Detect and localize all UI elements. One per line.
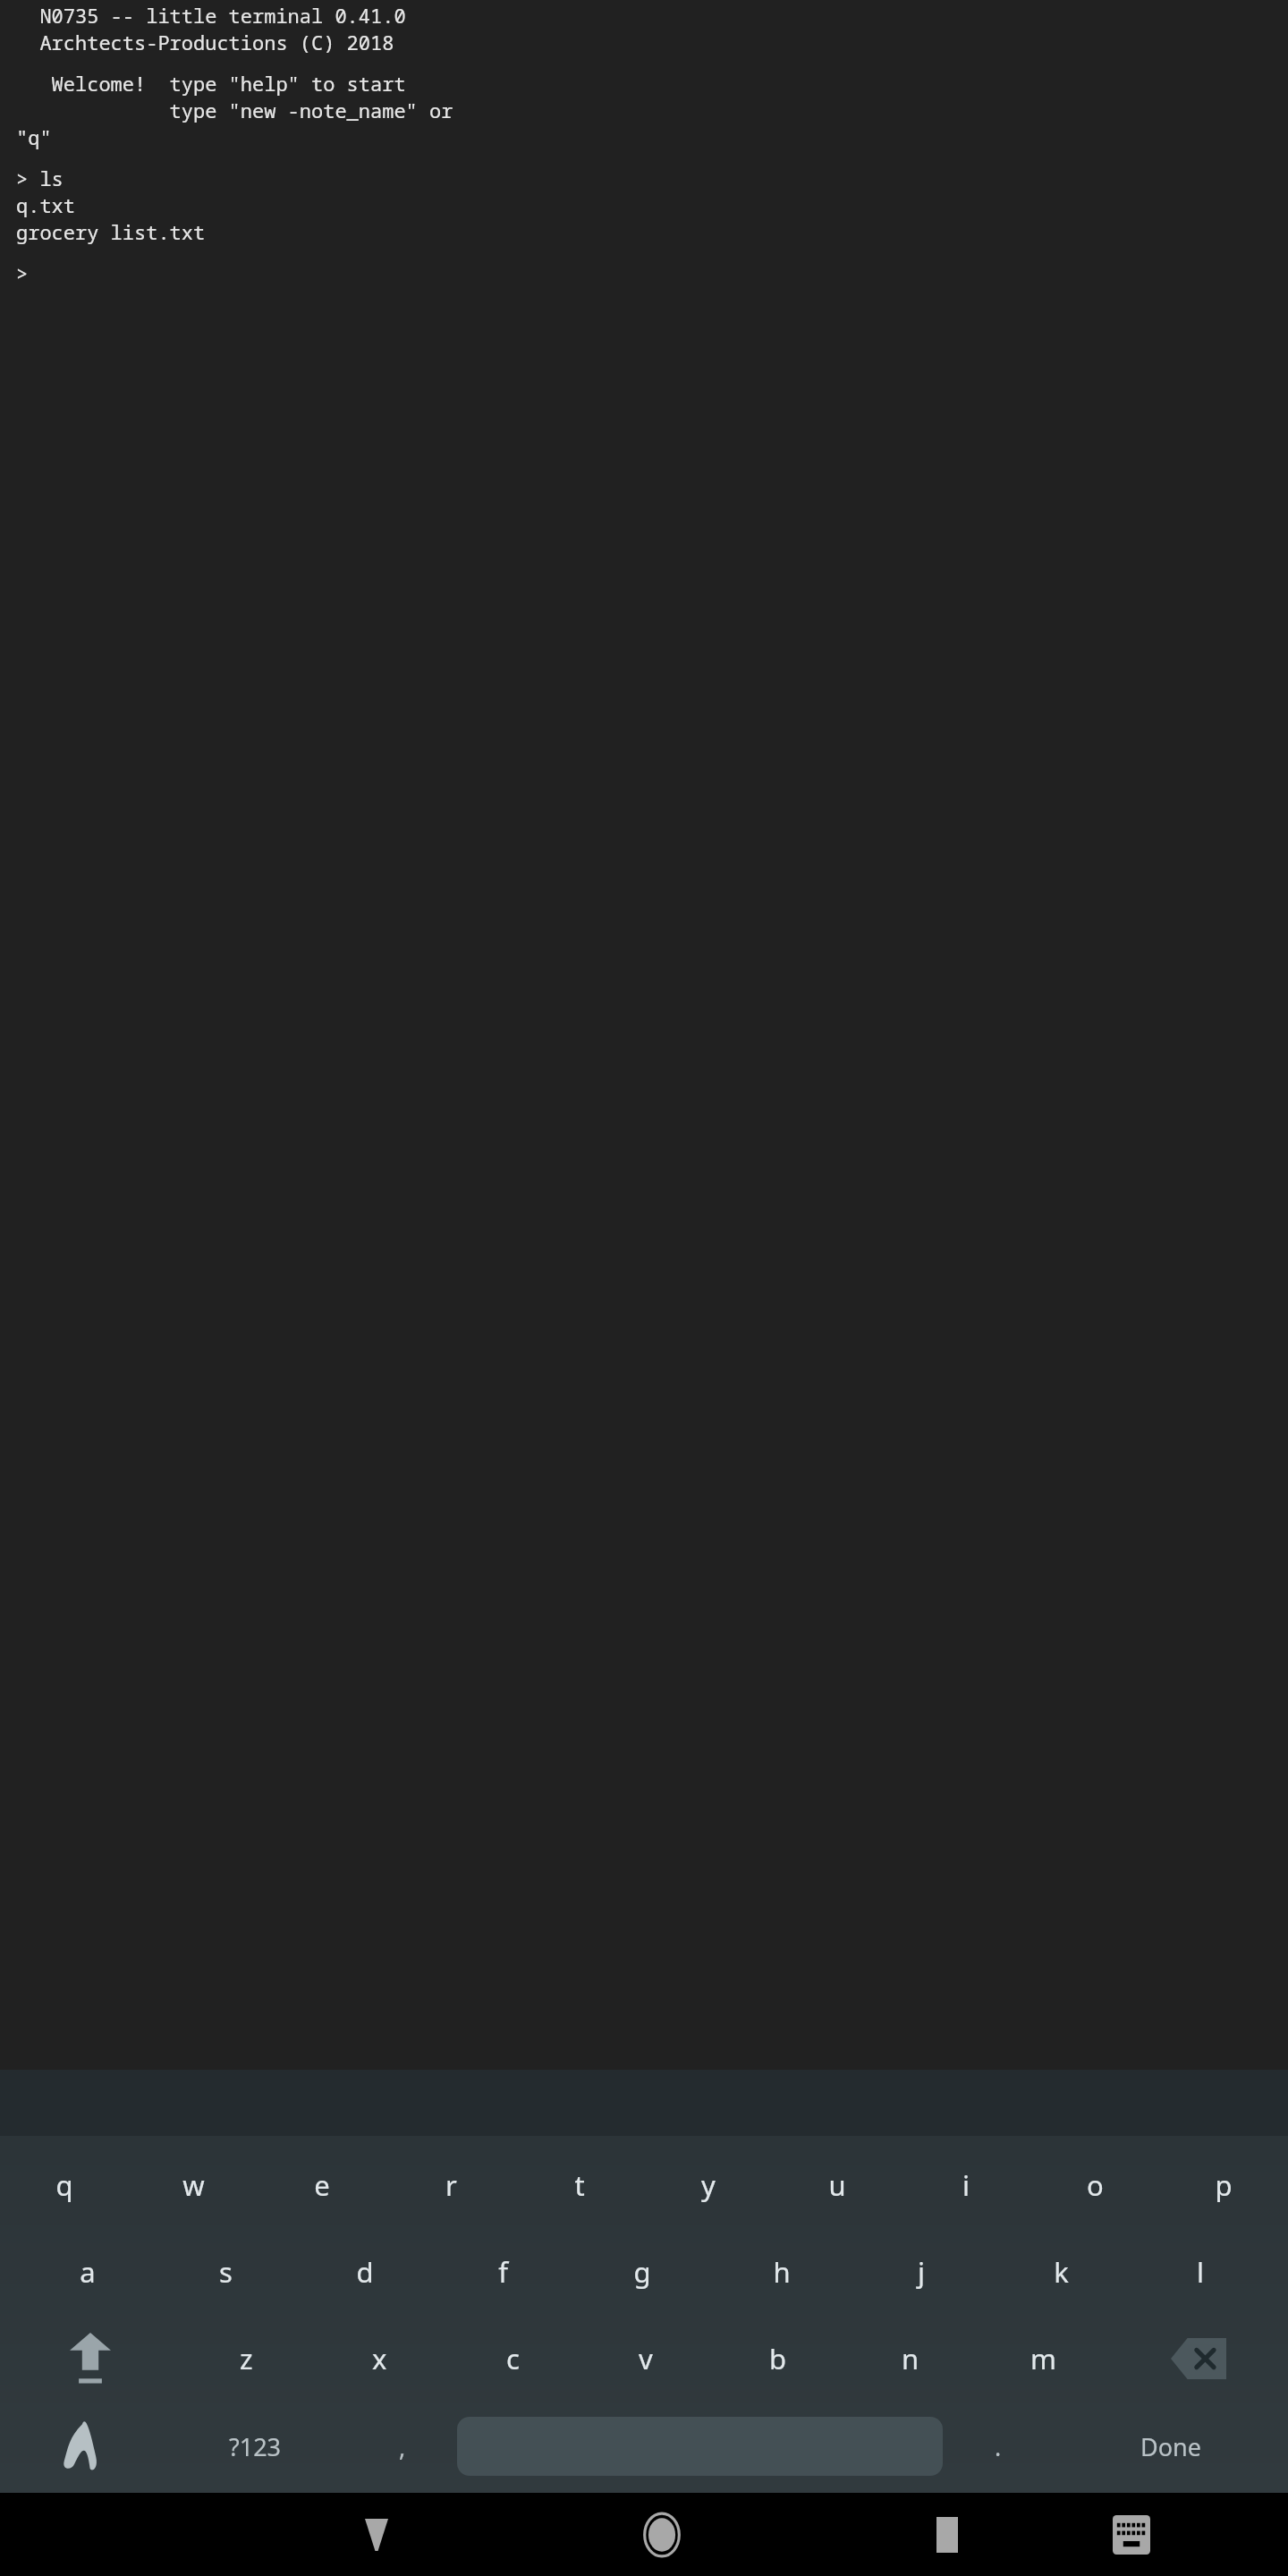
- staticText: k: [1054, 2253, 1069, 2291]
- staticText: g: [633, 2253, 651, 2291]
- staticText: r: [445, 2166, 457, 2204]
- staticText: m: [1030, 2340, 1056, 2377]
- staticText: a: [80, 2253, 96, 2291]
- button[interactable]: b: [712, 2315, 844, 2402]
- button[interactable]: a: [18, 2228, 157, 2315]
- button[interactable]: Home: [570, 2493, 754, 2576]
- staticText: Archtects-Productions (C) 2018: [16, 29, 394, 55]
- staticText: grocery list.txt: [16, 218, 206, 245]
- staticText: type "new -note_name" or: [16, 97, 453, 123]
- button[interactable]: v: [580, 2315, 712, 2402]
- staticText: t: [574, 2166, 585, 2204]
- staticText: h: [773, 2253, 791, 2291]
- staticText: w: [182, 2166, 205, 2204]
- staticText: c: [506, 2340, 520, 2377]
- button[interactable]: Shift: [0, 2315, 180, 2402]
- staticText: ?123: [229, 2430, 282, 2463]
- button[interactable]: k: [991, 2228, 1131, 2315]
- staticText: u: [828, 2166, 846, 2204]
- button[interactable]: Hide keyboard: [1039, 2493, 1224, 2576]
- staticText: s: [219, 2253, 233, 2291]
- button[interactable]: o: [1030, 2141, 1159, 2228]
- button[interactable]: y: [644, 2141, 773, 2228]
- button[interactable]: s: [157, 2228, 295, 2315]
- button[interactable]: u: [773, 2141, 902, 2228]
- button[interactable]: ?123: [163, 2402, 347, 2491]
- staticText: q: [55, 2166, 73, 2204]
- button[interactable]: Back: [284, 2493, 469, 2576]
- button[interactable]: n: [844, 2315, 977, 2402]
- button[interactable]: z: [180, 2315, 313, 2402]
- staticText: y: [701, 2166, 716, 2204]
- button[interactable]: t: [515, 2141, 644, 2228]
- staticText: >: [16, 259, 29, 286]
- button[interactable]: e: [258, 2141, 386, 2228]
- staticText: j: [918, 2253, 925, 2291]
- button[interactable]: r: [386, 2141, 515, 2228]
- staticText: d: [356, 2253, 374, 2291]
- button[interactable]: .: [943, 2402, 1053, 2491]
- button[interactable]: w: [129, 2141, 258, 2228]
- button[interactable]: Recent apps: [855, 2493, 1039, 2576]
- button[interactable]: x: [313, 2315, 446, 2402]
- button[interactable]: ,: [347, 2402, 457, 2491]
- button[interactable]: N0735 -- little terminal 0.41.0: [16, 2, 1284, 2070]
- button[interactable]: Backspace: [1109, 2315, 1288, 2402]
- staticText: ,: [399, 2430, 406, 2463]
- staticText: q.txt: [16, 191, 76, 218]
- button[interactable]: p: [1159, 2141, 1288, 2228]
- staticText: "q": [16, 123, 52, 150]
- button[interactable]: l: [1131, 2228, 1270, 2315]
- staticText: v: [639, 2340, 653, 2377]
- staticText: > ls: [16, 165, 64, 191]
- button[interactable]: m: [977, 2315, 1109, 2402]
- staticText: f: [498, 2253, 508, 2291]
- button[interactable]: g: [572, 2228, 712, 2315]
- button[interactable]: j: [852, 2228, 991, 2315]
- staticText: l: [1197, 2253, 1204, 2291]
- staticText: z: [240, 2340, 253, 2377]
- button[interactable]: c: [446, 2315, 580, 2402]
- staticText: Welcome! type "help" to start: [16, 70, 406, 97]
- staticText: b: [769, 2340, 787, 2377]
- staticText: N0735 -- little terminal 0.41.0: [16, 2, 406, 29]
- staticText: .: [995, 2430, 1002, 2463]
- staticText: n: [902, 2340, 919, 2377]
- button[interactable]: q: [0, 2141, 129, 2228]
- button[interactable]: f: [434, 2228, 572, 2315]
- button[interactable]: d: [295, 2228, 434, 2315]
- button[interactable]: h: [712, 2228, 852, 2315]
- button[interactable]: Done: [1053, 2402, 1288, 2491]
- staticText: o: [1087, 2166, 1104, 2204]
- staticText: x: [372, 2340, 387, 2377]
- button[interactable]: i: [902, 2141, 1030, 2228]
- staticText: Done: [1140, 2430, 1201, 2463]
- staticText: i: [962, 2166, 970, 2204]
- staticText: p: [1215, 2166, 1233, 2204]
- button[interactable]: Change input method: [0, 2402, 163, 2491]
- staticText: e: [314, 2166, 330, 2204]
